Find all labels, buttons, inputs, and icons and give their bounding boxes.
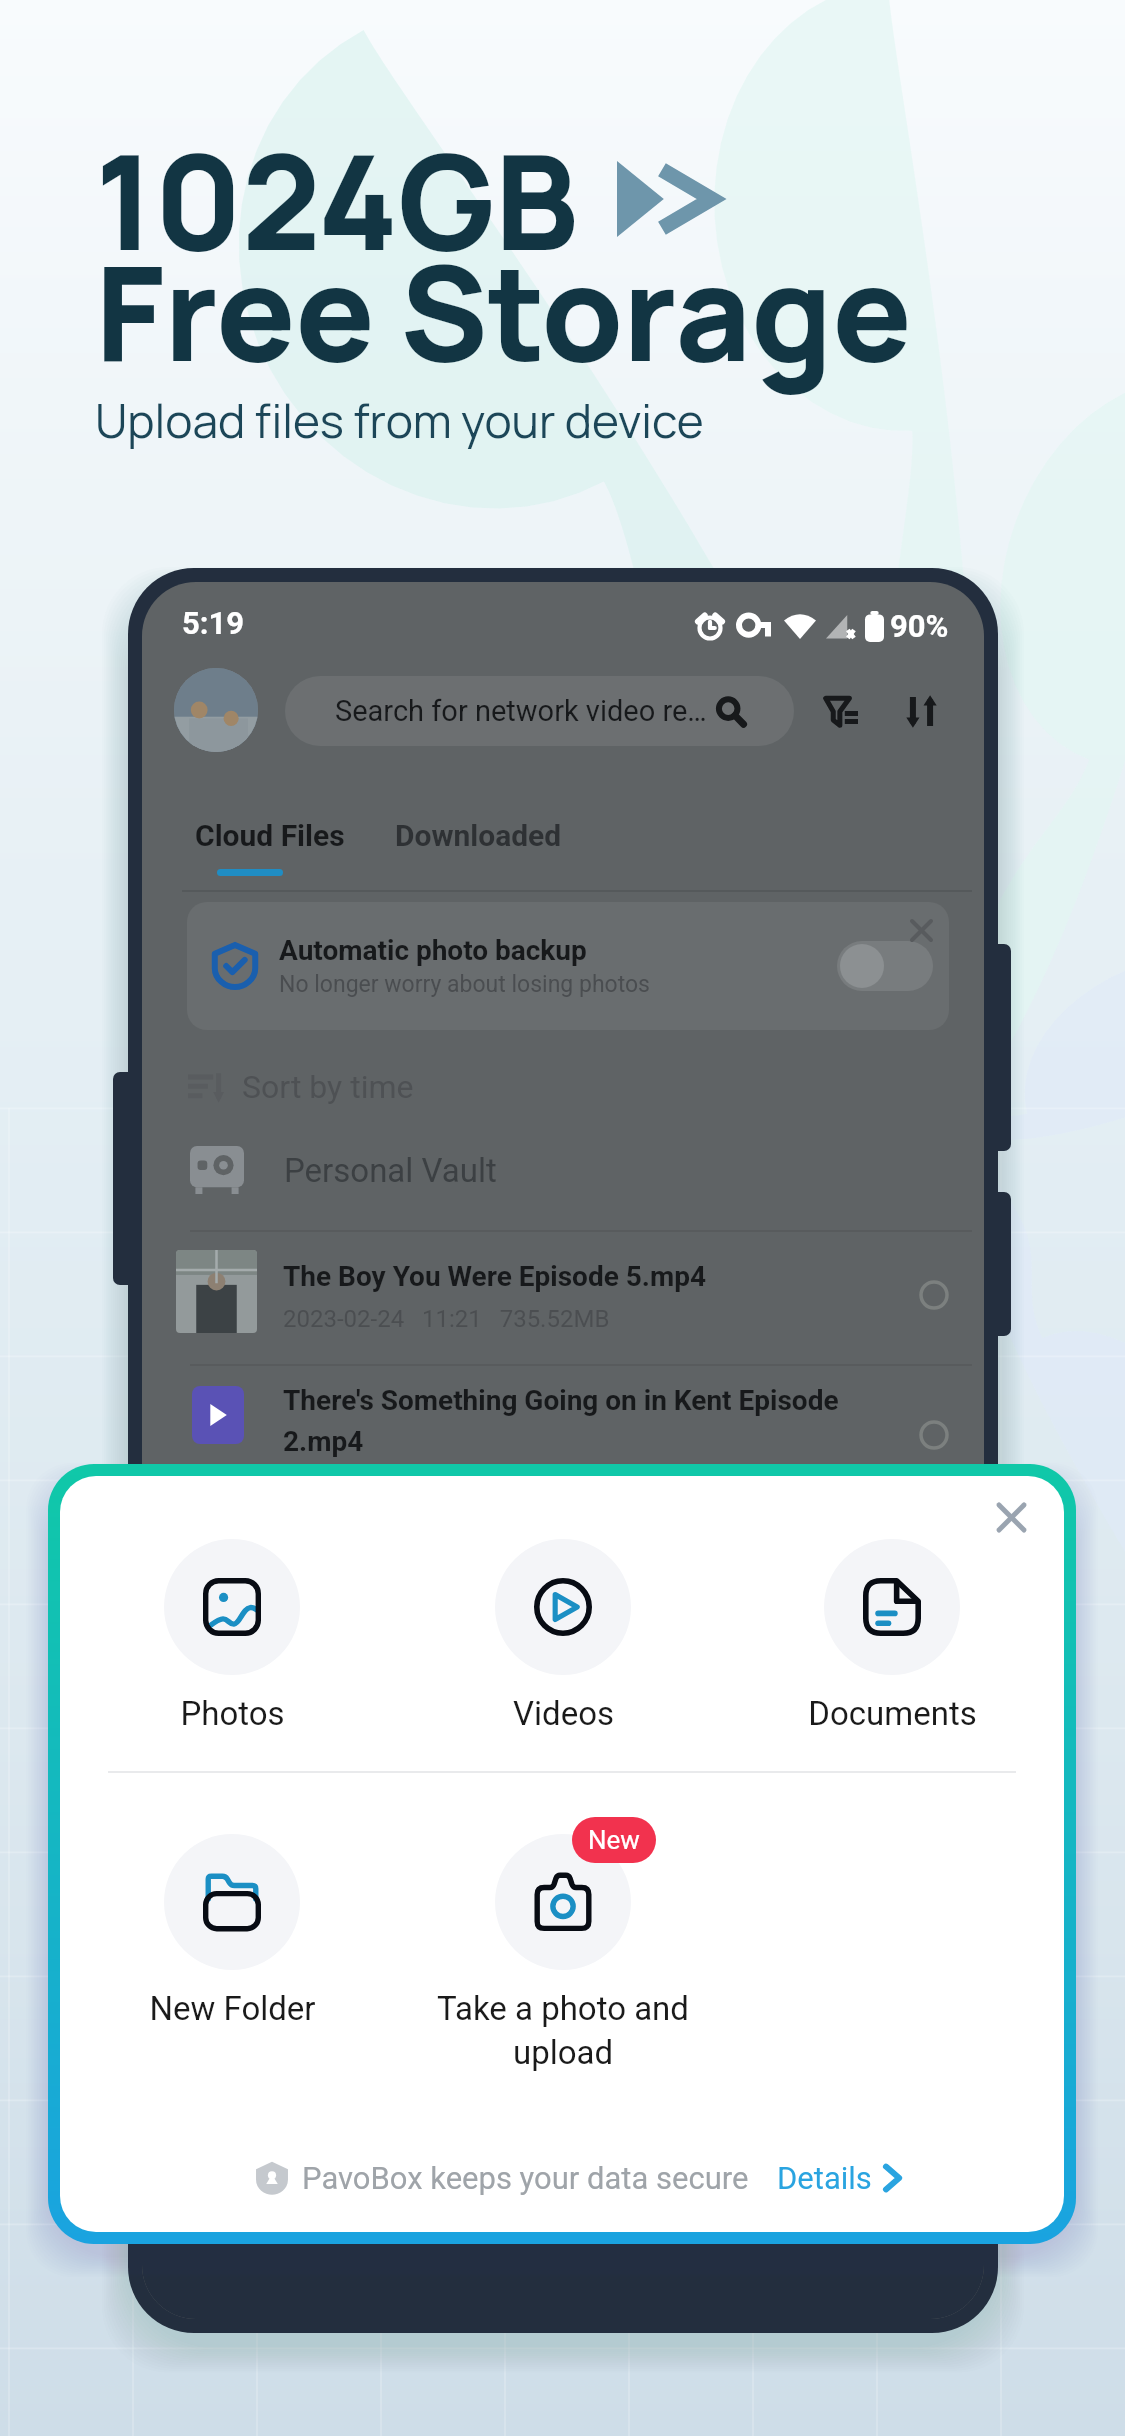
button[interactable]: Cloud Files xyxy=(195,818,345,876)
staticText: The Boy You Were Episode 5.mp4 xyxy=(283,1260,706,1293)
button[interactable]: New Folder xyxy=(74,1834,390,2028)
staticText: Take a photo and upload xyxy=(437,1989,689,2072)
staticText: Upload files from your device xyxy=(95,389,704,452)
button[interactable]: Sort xyxy=(894,684,948,738)
button[interactable]: The Boy You Were Episode 5.mp4 xyxy=(283,1260,883,1333)
staticText: Documents xyxy=(808,1694,977,1733)
staticText: Search for network video re… xyxy=(335,694,707,728)
button[interactable]: Photos xyxy=(74,1539,390,1733)
staticText: Details xyxy=(777,2160,872,2196)
button[interactable]: Take a photo and upload xyxy=(405,1834,721,2072)
staticText: Sort by time xyxy=(242,1068,414,1106)
staticText: Photos xyxy=(180,1694,285,1733)
staticText: 2023-02-24 11:21 735.52MB xyxy=(283,1305,610,1333)
button[interactable]: Close xyxy=(978,1484,1044,1550)
staticText: 90% xyxy=(890,608,949,644)
button[interactable]: Sort by time xyxy=(188,1068,414,1106)
staticText: 5:19 xyxy=(182,605,245,641)
staticText: Automatic photo backup xyxy=(279,934,587,967)
button[interactable]: Personal Vault xyxy=(190,1134,960,1206)
button[interactable]: Documents xyxy=(734,1539,1050,1733)
button[interactable]: Filter xyxy=(814,684,868,738)
staticText: New xyxy=(588,1825,640,1855)
staticText: Cloud Files xyxy=(195,818,345,853)
staticText: Videos xyxy=(513,1694,614,1733)
button[interactable]: Dismiss xyxy=(901,910,941,950)
staticText: Personal Vault xyxy=(284,1151,497,1190)
button[interactable]: Automatic photo backup xyxy=(187,902,949,1030)
button[interactable]: Toggle backup xyxy=(837,941,933,991)
staticText: 1024GB Free Storage xyxy=(95,110,912,400)
button[interactable]: Search for network video re… xyxy=(285,676,794,746)
button[interactable]: Videos xyxy=(405,1539,721,1733)
button[interactable]: There's Something Going on in Kent Episo… xyxy=(283,1384,903,1458)
button[interactable]: Profile xyxy=(174,668,258,752)
button[interactable]: Details xyxy=(777,2160,904,2196)
button[interactable]: Downloaded xyxy=(395,818,562,853)
staticText: New Folder xyxy=(149,1989,316,2028)
staticText: PavoBox keeps your data secure xyxy=(302,2160,749,2196)
staticText: No longer worry about losing photos xyxy=(279,971,650,998)
